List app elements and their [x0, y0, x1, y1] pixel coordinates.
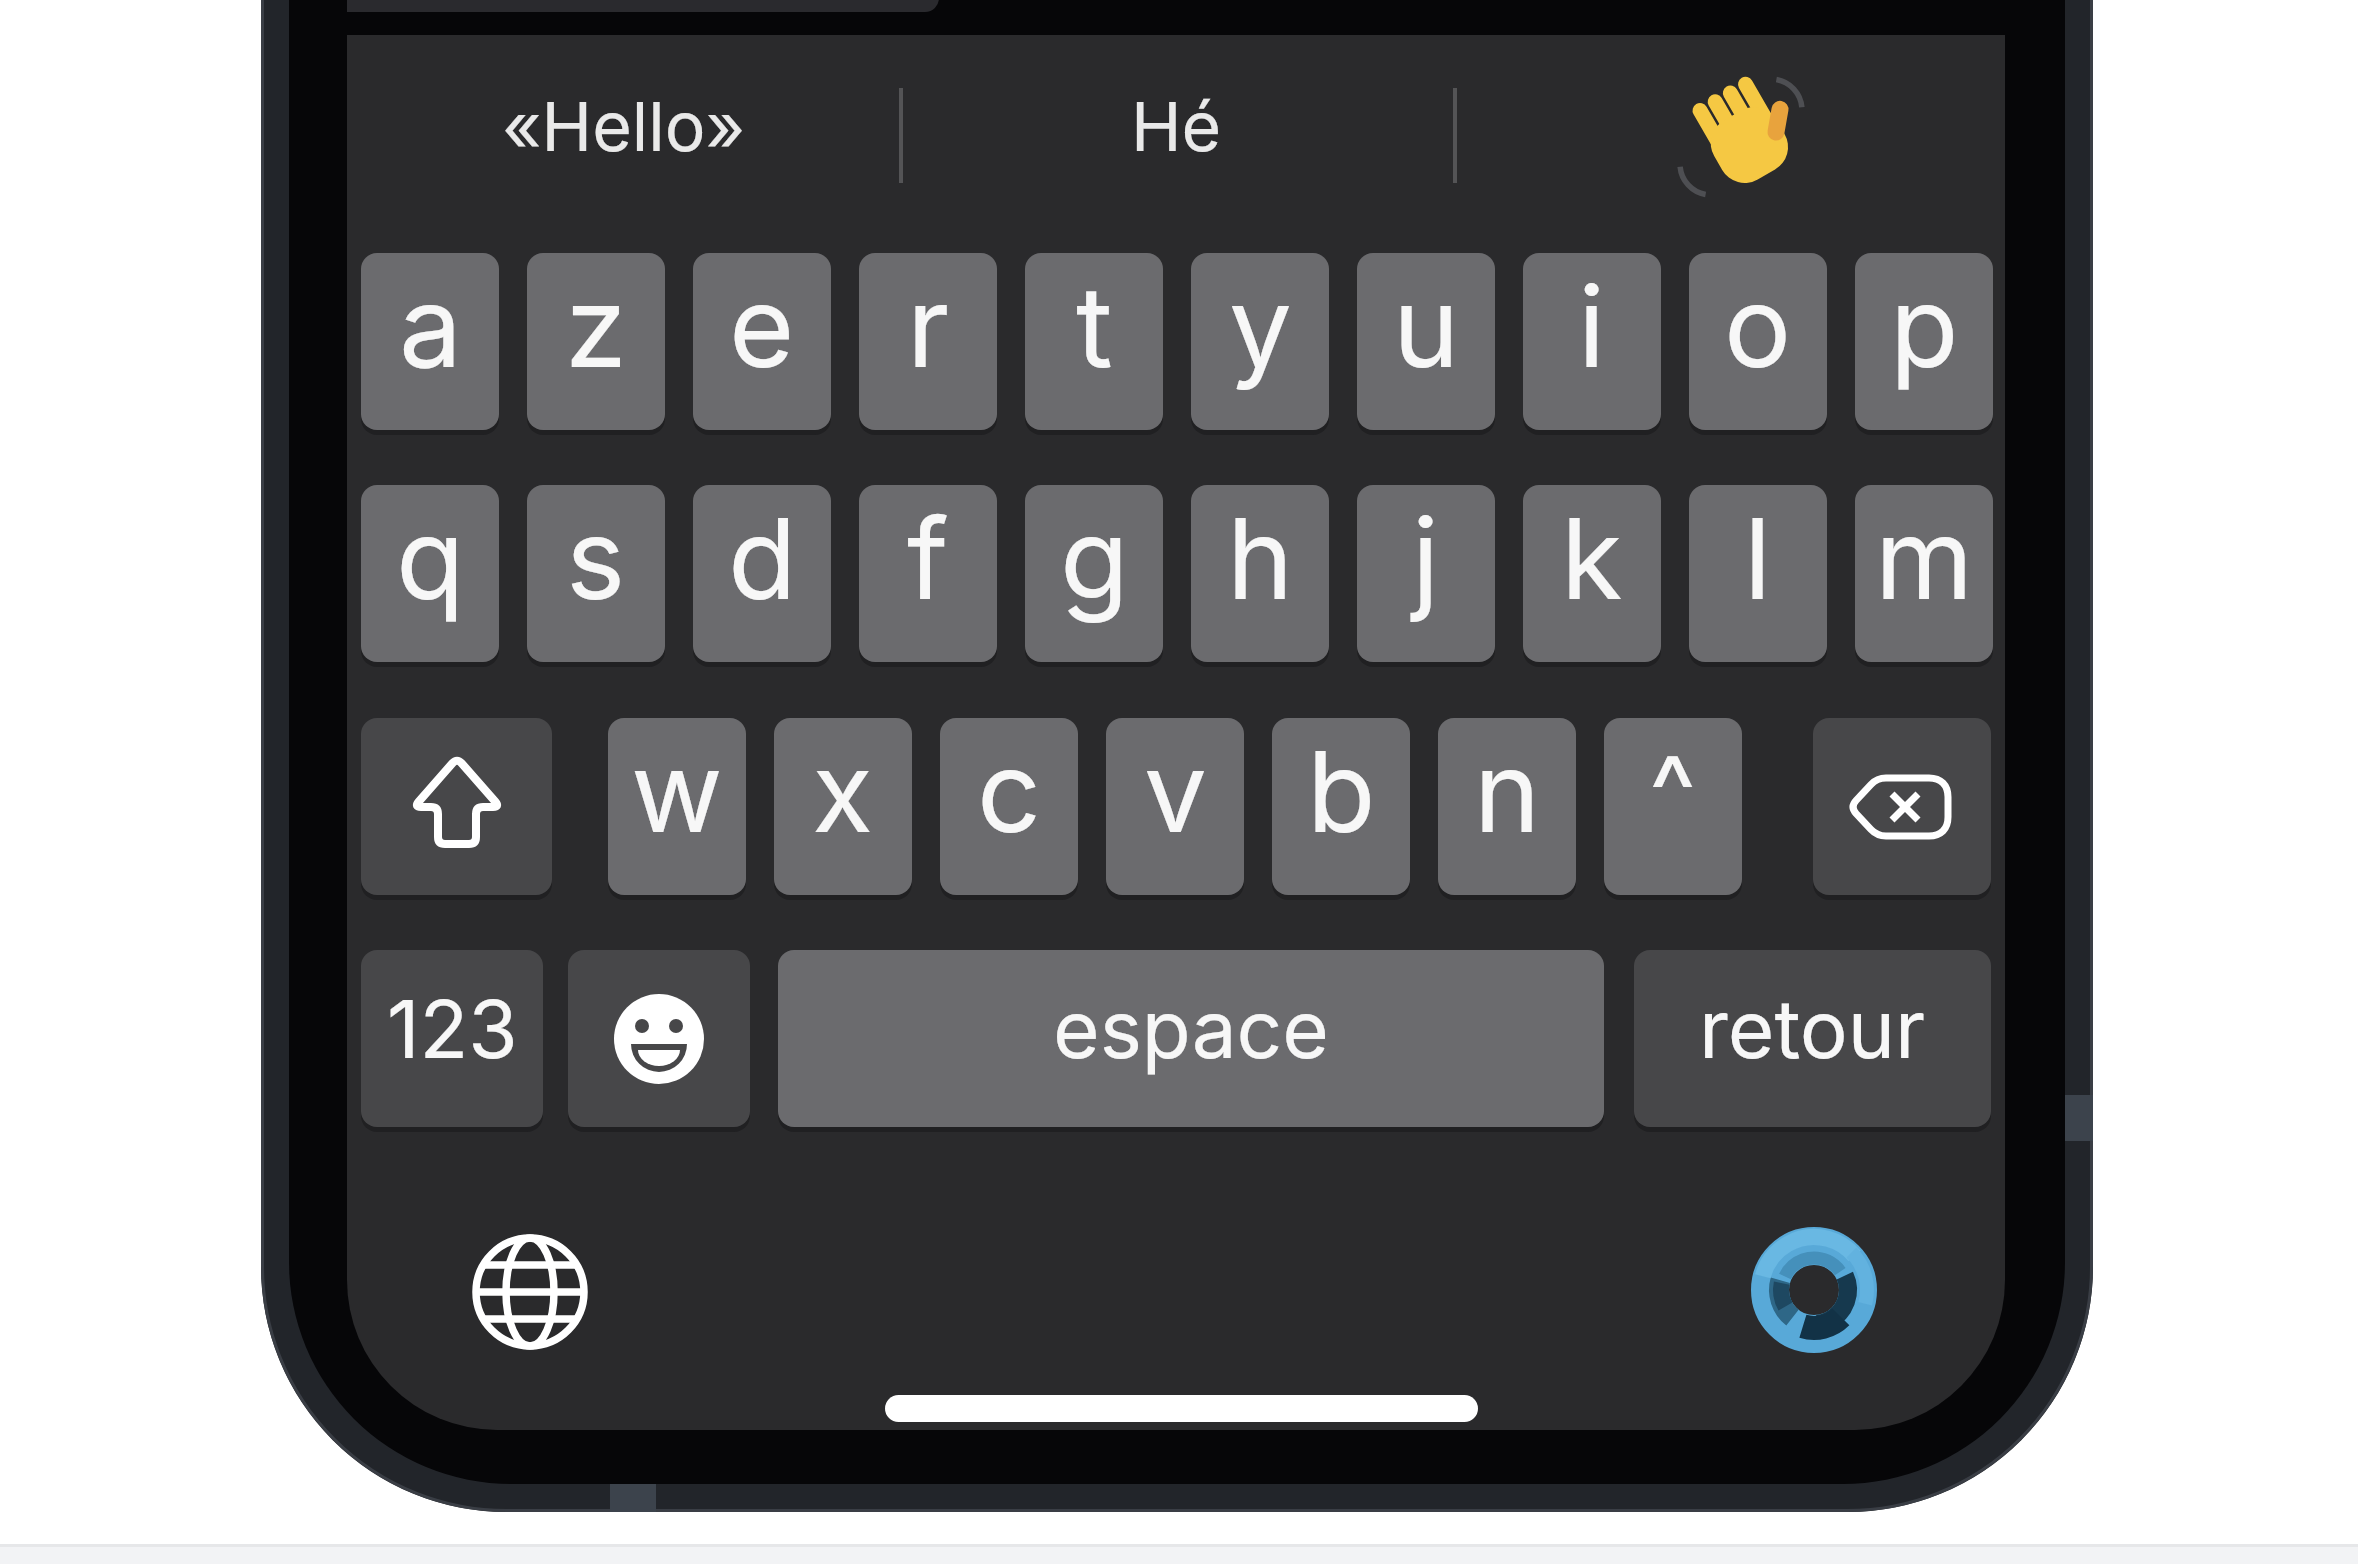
- button[interactable]: l: [1689, 485, 1827, 662]
- button[interactable]: t: [1025, 253, 1163, 430]
- button[interactable]: o: [1689, 253, 1827, 430]
- button[interactable]: [361, 718, 552, 895]
- staticText: 123: [387, 980, 518, 1077]
- button[interactable]: 123: [361, 950, 543, 1127]
- staticText: l: [1744, 490, 1772, 626]
- button[interactable]: a: [361, 253, 499, 430]
- staticText: retour: [1699, 980, 1926, 1077]
- button[interactable]: y: [1191, 253, 1329, 430]
- button[interactable]: [568, 950, 750, 1127]
- staticText: j: [1412, 490, 1440, 626]
- button[interactable]: [1724, 1200, 1904, 1380]
- staticText: s: [566, 490, 626, 626]
- staticText: r: [907, 258, 950, 394]
- button[interactable]: c: [940, 718, 1078, 895]
- button[interactable]: q: [361, 485, 499, 662]
- button[interactable]: e: [693, 253, 831, 430]
- staticText: i: [1578, 258, 1606, 394]
- staticText: o: [1724, 258, 1792, 394]
- button[interactable]: x: [774, 718, 912, 895]
- button[interactable]: w: [608, 718, 746, 895]
- button[interactable]: espace: [778, 950, 1604, 1127]
- staticText: y: [1229, 258, 1292, 394]
- button[interactable]: Hé: [900, 35, 1453, 235]
- staticText: u: [1393, 258, 1460, 394]
- button[interactable]: b: [1272, 718, 1410, 895]
- button[interactable]: k: [1523, 485, 1661, 662]
- button[interactable]: [1813, 718, 1991, 895]
- button[interactable]: d: [693, 485, 831, 662]
- staticText: x: [812, 723, 874, 859]
- button[interactable]: n: [1438, 718, 1576, 895]
- button[interactable]: r: [859, 253, 997, 430]
- staticText: a: [399, 258, 462, 394]
- button[interactable]: ^: [1604, 718, 1742, 895]
- button[interactable]: [1640, 35, 1870, 235]
- staticText: m: [1875, 490, 1974, 626]
- staticText: e: [729, 258, 795, 394]
- button[interactable]: p: [1855, 253, 1993, 430]
- button[interactable]: i: [1523, 253, 1661, 430]
- button[interactable]: z: [527, 253, 665, 430]
- staticText: t: [1076, 258, 1113, 394]
- button[interactable]: f: [859, 485, 997, 662]
- button[interactable]: v: [1106, 718, 1244, 895]
- staticText: ^: [1649, 730, 1697, 851]
- staticText: c: [977, 723, 1041, 859]
- button[interactable]: h: [1191, 485, 1329, 662]
- button[interactable]: «Hello»: [347, 35, 900, 235]
- button[interactable]: j: [1357, 485, 1495, 662]
- button[interactable]: s: [527, 485, 665, 662]
- staticText: w: [631, 723, 723, 859]
- staticText: d: [728, 490, 797, 626]
- staticText: p: [1890, 258, 1959, 394]
- staticText: Hé: [1131, 85, 1222, 167]
- staticText: n: [1474, 723, 1541, 859]
- staticText: «Hello»: [502, 85, 746, 167]
- staticText: k: [1561, 490, 1623, 626]
- button[interactable]: g: [1025, 485, 1163, 662]
- staticText: v: [1144, 723, 1207, 859]
- staticText: espace: [1053, 980, 1329, 1077]
- staticText: h: [1227, 490, 1294, 626]
- button[interactable]: m: [1855, 485, 1993, 662]
- staticText: q: [396, 490, 465, 626]
- button[interactable]: u: [1357, 253, 1495, 430]
- button[interactable]: [440, 1202, 620, 1382]
- staticText: f: [907, 490, 949, 626]
- staticText: z: [565, 258, 627, 394]
- button[interactable]: retour: [1634, 950, 1991, 1127]
- staticText: b: [1307, 723, 1376, 859]
- staticText: g: [1060, 490, 1129, 626]
